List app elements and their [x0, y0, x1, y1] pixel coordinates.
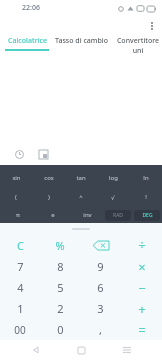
button[interactable]: log	[97, 169, 129, 187]
button[interactable]: 4	[0, 277, 40, 298]
staticText: ÷	[138, 236, 146, 254]
staticText: 7	[17, 259, 24, 274]
button[interactable]: %	[40, 234, 80, 256]
button[interactable]: 1	[0, 298, 40, 319]
staticText: %	[55, 238, 65, 253]
staticText: ln	[143, 174, 149, 182]
button[interactable]: History	[10, 145, 28, 163]
button[interactable]: ,	[80, 319, 121, 340]
staticText: Calcolatrice	[8, 36, 47, 46]
staticText: √	[111, 194, 115, 201]
button[interactable]: tan	[65, 169, 97, 187]
button[interactable]: Recent apps	[117, 340, 137, 360]
button[interactable]: C	[0, 234, 40, 256]
button[interactable]: 0	[40, 319, 80, 340]
button[interactable]: π	[2, 207, 34, 223]
staticText: 4	[17, 280, 24, 295]
staticText: 9	[97, 259, 104, 274]
staticText: 22:06	[22, 3, 40, 13]
staticText: ,	[99, 322, 102, 337]
button[interactable]: =	[121, 319, 162, 340]
button[interactable]: −	[121, 277, 162, 298]
staticText: Tasso di cambio	[55, 36, 108, 46]
staticText: )	[48, 193, 50, 201]
button[interactable]: 2	[40, 298, 80, 319]
staticText: e	[51, 211, 55, 219]
button[interactable]: inv	[71, 207, 103, 223]
button[interactable]: Home	[71, 340, 91, 360]
button[interactable]: )	[33, 188, 65, 206]
button[interactable]: ^	[65, 188, 97, 206]
staticText: +	[138, 300, 146, 318]
staticText: DEG	[142, 212, 153, 219]
button[interactable]: 9	[80, 256, 121, 277]
button[interactable]: 8	[40, 256, 80, 277]
staticText: π	[16, 211, 20, 219]
staticText: ^	[79, 193, 83, 201]
staticText: !	[145, 193, 147, 201]
button[interactable]: +	[121, 298, 162, 319]
staticText: ×	[138, 258, 146, 276]
button[interactable]: sin	[0, 169, 32, 187]
button[interactable]: Calcolatrice	[5, 36, 49, 51]
staticText: tan	[76, 174, 86, 182]
button[interactable]: ×	[121, 256, 162, 277]
staticText: 6	[97, 280, 104, 295]
button[interactable]: !	[130, 188, 162, 206]
button[interactable]: Tasso di cambio	[55, 36, 108, 46]
button[interactable]: e	[37, 207, 69, 223]
staticText: sin	[12, 174, 21, 182]
staticText: −	[138, 279, 146, 297]
staticText: 8	[57, 259, 64, 274]
staticText: 2	[57, 301, 64, 316]
button[interactable]: Save	[34, 145, 52, 163]
button[interactable]: (	[0, 188, 32, 206]
staticText: inv	[83, 211, 92, 219]
staticText: 5	[57, 280, 64, 295]
staticText: C	[17, 238, 24, 253]
button[interactable]: Delete	[80, 234, 121, 256]
button[interactable]: DEG	[134, 210, 160, 221]
button[interactable]: cos	[33, 169, 65, 187]
button[interactable]: ÷	[121, 234, 162, 256]
staticText: (	[15, 193, 17, 201]
button[interactable]: 6	[80, 277, 121, 298]
button[interactable]: ln	[130, 169, 162, 187]
staticText: 0	[57, 322, 64, 337]
staticText: 00	[14, 323, 26, 337]
button[interactable]: √	[97, 188, 129, 206]
button[interactable]: RAD	[105, 210, 131, 221]
staticText: 3	[97, 301, 104, 316]
staticText: Convertitore uni	[114, 36, 162, 56]
button[interactable]: 00	[0, 319, 40, 340]
button[interactable]: 5	[40, 277, 80, 298]
button[interactable]: 7	[0, 256, 40, 277]
staticText: RAD	[113, 212, 123, 219]
button[interactable]: Back	[26, 340, 46, 360]
button[interactable]: Convertitore uni	[114, 36, 162, 56]
button[interactable]: More options	[142, 16, 162, 36]
button[interactable]: 3	[80, 298, 121, 319]
staticText: =	[138, 321, 146, 339]
staticText: 1	[17, 301, 24, 316]
staticText: log	[109, 174, 118, 182]
staticText: cos	[44, 174, 54, 182]
